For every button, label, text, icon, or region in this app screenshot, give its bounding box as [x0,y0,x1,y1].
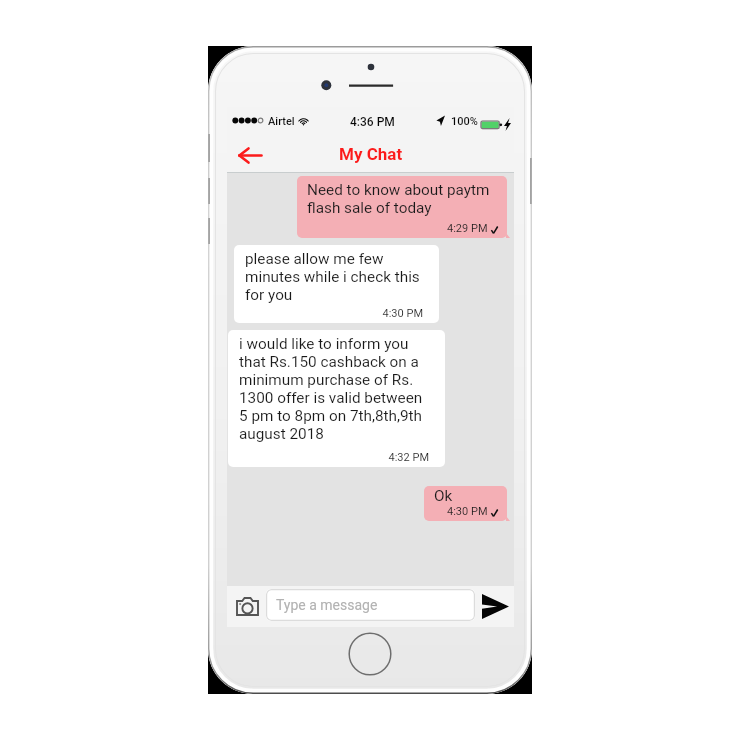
staticText: Ok [434,487,453,505]
staticText: 4:29 PM [447,222,488,235]
staticText: please allow me few minutes while i chec… [245,250,423,304]
button[interactable]: Back [230,138,270,172]
staticText: i would like to inform you that Rs.150 c… [239,335,429,443]
button[interactable]: please allow me few minutes while i chec… [234,245,439,323]
button[interactable]: Need to know about paytm flash sale of t… [297,176,507,238]
staticText: My Chat [339,144,403,164]
button[interactable]: Send [476,587,514,626]
button[interactable]: Ok [424,486,507,521]
staticText: Airtel [268,115,295,128]
button[interactable]: Camera [229,588,265,625]
staticText: 100% [451,115,478,128]
button[interactable]: Type a message [266,589,475,621]
staticText: Need to know about paytm flash sale of t… [307,181,498,217]
staticText: 4:30 PM [245,307,423,320]
staticText: Type a message [276,597,378,613]
staticText: 4:30 PM [447,505,488,518]
staticText: 4:32 PM [239,451,429,464]
button[interactable]: i would like to inform you that Rs.150 c… [228,330,445,467]
staticText: 4:36 PM [350,115,395,129]
